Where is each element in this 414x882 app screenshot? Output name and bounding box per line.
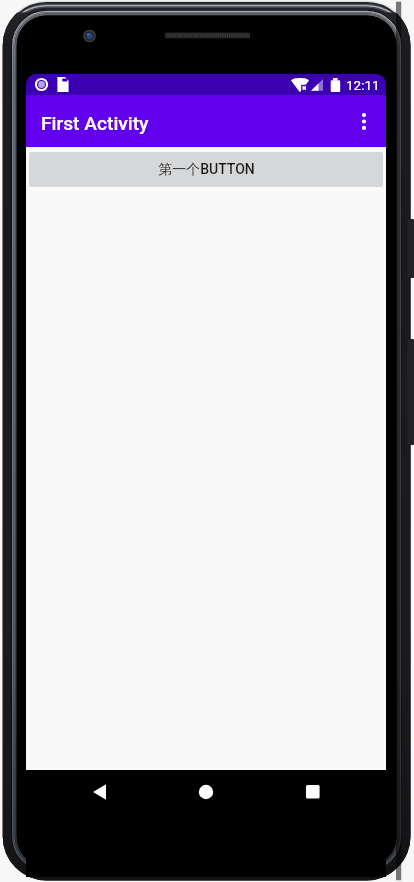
- staticText: 第一个BUTTON: [158, 161, 255, 179]
- button[interactable]: More options: [342, 99, 386, 143]
- staticText: 12:11: [346, 77, 380, 93]
- button[interactable]: Recent apps: [288, 770, 336, 877]
- button[interactable]: Back: [74, 770, 122, 877]
- button[interactable]: 第一个BUTTON: [29, 152, 383, 187]
- button[interactable]: Home: [182, 770, 230, 877]
- staticText: First Activity: [41, 112, 149, 135]
